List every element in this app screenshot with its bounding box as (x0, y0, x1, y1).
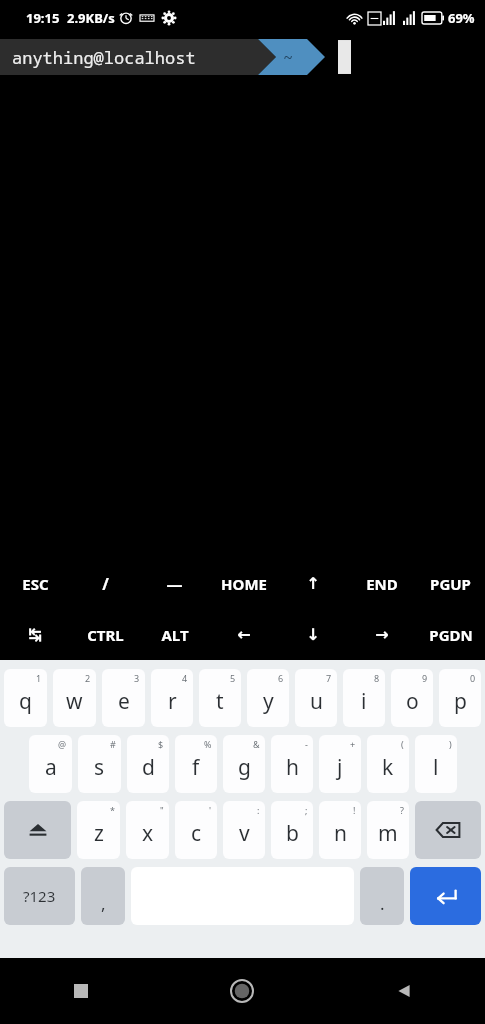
button[interactable]: 9 (391, 669, 433, 727)
button[interactable]: PGUP (416, 558, 485, 609)
button[interactable]: END (347, 558, 416, 609)
button[interactable]: ? (367, 801, 409, 859)
staticText: x (142, 819, 154, 848)
button[interactable]: ; (271, 801, 313, 859)
staticText: m (378, 819, 398, 848)
staticText: k (382, 753, 394, 782)
staticText: & (253, 738, 260, 750)
staticText: ↹ (28, 625, 42, 644)
staticText: g (238, 753, 251, 782)
staticText: a (45, 753, 57, 782)
button[interactable]: . (360, 867, 404, 925)
staticText: ← (237, 625, 251, 644)
staticText: $ (158, 738, 164, 750)
button[interactable]: * (77, 801, 120, 859)
staticText: l (433, 753, 439, 782)
button[interactable]: + (319, 735, 361, 793)
button[interactable]: : (223, 801, 265, 859)
button[interactable]: 5 (199, 669, 241, 727)
staticText: ! (353, 804, 356, 816)
staticText: e (118, 687, 130, 716)
button[interactable]: % (175, 735, 217, 793)
staticText: 1 (36, 672, 42, 684)
staticText: y (263, 687, 274, 716)
button[interactable]: Recents (0, 958, 161, 1024)
staticText: PGDN (429, 625, 473, 645)
button[interactable]: / (70, 558, 140, 609)
button[interactable]: ALT (140, 609, 209, 660)
button[interactable]: " (126, 801, 169, 859)
button[interactable]: 7 (295, 669, 337, 727)
button[interactable]: CTRL (70, 609, 140, 660)
staticText: v (239, 819, 250, 848)
button[interactable]: 3 (102, 669, 145, 727)
button[interactable]: — (140, 558, 209, 609)
staticText: o (406, 687, 419, 716)
staticText: HOME (221, 574, 267, 594)
button[interactable]: HOME (209, 558, 278, 609)
staticText: PGUP (430, 574, 471, 594)
button[interactable]: 0 (439, 669, 481, 727)
button[interactable]: 4 (151, 669, 193, 727)
staticText: → (375, 625, 389, 644)
staticText: ESC (22, 574, 49, 594)
staticText: d (142, 753, 155, 782)
button[interactable]: @ (29, 735, 72, 793)
staticText: 6 (278, 672, 284, 684)
button[interactable]: ↹ (0, 609, 70, 660)
button[interactable]: PGDN (416, 609, 485, 660)
button[interactable]: $ (127, 735, 169, 793)
button[interactable]: Enter (410, 867, 481, 925)
button[interactable]: → (347, 609, 416, 660)
button[interactable]: ( (367, 735, 409, 793)
button[interactable]: ' (175, 801, 217, 859)
staticText: " (160, 804, 164, 816)
staticText: j (337, 753, 343, 782)
button[interactable]: # (78, 735, 121, 793)
button[interactable]: ! (319, 801, 361, 859)
staticText: @ (58, 738, 67, 750)
staticText: CTRL (87, 625, 124, 645)
staticText: f (192, 753, 200, 782)
button[interactable]: Backspace (415, 801, 481, 859)
button[interactable]: ) (415, 735, 457, 793)
staticText: ? (400, 804, 404, 816)
button[interactable]: ← (209, 609, 278, 660)
staticText: 69% (448, 9, 475, 27)
button[interactable]: Home (161, 958, 323, 1024)
staticText: 9 (422, 672, 428, 684)
staticText: ( (401, 738, 404, 750)
staticText: * (110, 804, 115, 816)
staticText: % (204, 738, 212, 750)
button[interactable]: 1 (4, 669, 47, 727)
staticText: w (66, 687, 83, 716)
staticText: 0 (470, 672, 476, 684)
button[interactable]: 6 (247, 669, 289, 727)
button[interactable]: ESC (0, 558, 70, 609)
button[interactable]: ↑ (278, 558, 347, 609)
staticText: b (286, 819, 299, 848)
staticText: — (166, 573, 183, 595)
staticText: , (101, 892, 106, 915)
button[interactable]: ?123 (4, 867, 75, 925)
button[interactable]: 8 (343, 669, 385, 727)
staticText: ~ (283, 46, 294, 69)
staticText: 2.9KB/s (67, 9, 115, 27)
button[interactable]: Back (323, 958, 485, 1024)
button[interactable]: & (223, 735, 265, 793)
staticText: q (19, 687, 32, 716)
button[interactable]: 2 (53, 669, 96, 727)
staticText: ↑ (306, 574, 320, 593)
button[interactable]: , (81, 867, 125, 925)
staticText: 3 (134, 672, 140, 684)
button[interactable]: ↓ (278, 609, 347, 660)
button[interactable]: Shift (4, 801, 71, 859)
button[interactable]: - (271, 735, 313, 793)
staticText: ; (305, 804, 308, 816)
staticText: anything@localhost (12, 46, 196, 69)
staticText: t (216, 687, 224, 716)
staticText: r (168, 687, 177, 716)
staticText: + (350, 738, 356, 750)
staticText: ?123 (23, 886, 56, 906)
